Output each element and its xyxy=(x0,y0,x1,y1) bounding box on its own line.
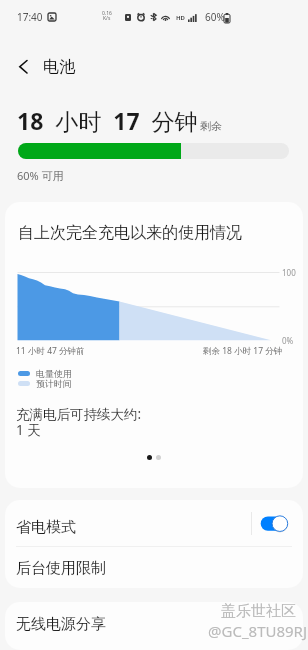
staticText: 自上次完全充电以来的使用情况 xyxy=(18,223,242,243)
staticText: 18 小时 17 分钟 xyxy=(17,105,198,136)
staticText: 电量使用 xyxy=(36,368,72,379)
button[interactable]: 无线电源分享 xyxy=(5,602,303,647)
staticText: 60% 可用 xyxy=(17,168,64,183)
staticText: 100 xyxy=(282,267,296,278)
staticText: 剩余 xyxy=(200,119,222,133)
staticText: 无线电源分享 xyxy=(16,615,106,634)
staticText: 60% xyxy=(205,10,225,24)
button[interactable]: 后台使用限制 xyxy=(5,547,303,588)
staticText: 省电模式 xyxy=(16,518,76,537)
staticText: 预计时间 xyxy=(36,378,72,389)
staticText: 1 天 xyxy=(16,421,41,439)
button[interactable]: 返回 xyxy=(7,51,39,83)
staticText: 盖乐世社区 xyxy=(221,602,296,621)
staticText: K/s xyxy=(103,15,111,22)
staticText: 0% xyxy=(282,335,294,346)
staticText: 剩余 18 小时 17 分钟 xyxy=(203,345,283,357)
staticText: 充满电后可持续大约: xyxy=(16,405,142,423)
staticText: 电池 xyxy=(43,57,75,77)
staticText: 0.16 xyxy=(102,10,112,17)
staticText: 后台使用限制 xyxy=(16,559,106,578)
staticText: @GC_8TU89RJ xyxy=(208,621,308,641)
button[interactable]: 省电模式开关 xyxy=(257,508,297,538)
button[interactable]: 省电模式 xyxy=(5,504,303,550)
button[interactable]: 自上次完全充电以来的使用情况 xyxy=(5,202,303,488)
staticText: HD xyxy=(176,14,185,22)
staticText: 11 小时 47 分钟前 xyxy=(16,345,85,357)
staticText: 17:40 xyxy=(17,10,43,24)
